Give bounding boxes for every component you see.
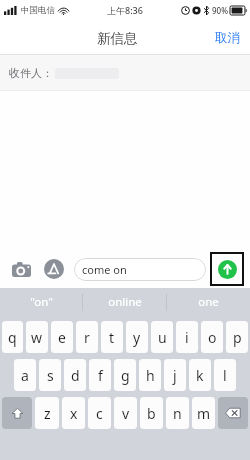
button[interactable]: g [114, 359, 136, 391]
staticText: h [146, 366, 155, 385]
button[interactable]: Camera [6, 254, 36, 284]
button[interactable]: Backspace [218, 397, 248, 429]
staticText: 收件人： [9, 66, 53, 80]
staticText: g [121, 366, 130, 385]
button[interactable]: n [166, 397, 189, 429]
button[interactable]: b [140, 397, 163, 429]
button[interactable]: y [126, 321, 148, 353]
button[interactable]: z [35, 397, 59, 429]
staticText: s [47, 366, 54, 385]
button[interactable]: come on [74, 258, 206, 281]
button[interactable]: o [201, 321, 223, 353]
staticText: n [173, 404, 182, 423]
staticText: w [31, 328, 43, 347]
button[interactable]: j [164, 359, 186, 391]
button[interactable]: w [26, 321, 48, 353]
staticText: m [197, 404, 211, 423]
button[interactable]: i [176, 321, 198, 353]
button[interactable]: q [2, 321, 23, 353]
staticText: p [233, 328, 242, 347]
staticText: j [173, 366, 177, 385]
button[interactable]: u [151, 321, 173, 353]
staticText: x [70, 404, 78, 423]
staticText: t [109, 328, 115, 347]
staticText: r [84, 328, 90, 347]
staticText: q [8, 328, 17, 347]
button[interactable]: one [167, 288, 250, 316]
button[interactable]: m [192, 397, 215, 429]
staticText: 取消 [215, 30, 240, 46]
staticText: "on" [30, 294, 53, 310]
staticText: 中国电信 [21, 5, 55, 16]
staticText: come on [82, 262, 127, 277]
button[interactable]: t [101, 321, 123, 353]
button[interactable]: online [83, 288, 166, 316]
button[interactable]: 取消 [205, 25, 250, 51]
staticText: o [208, 328, 217, 347]
staticText: i [185, 328, 189, 347]
staticText: d [71, 366, 80, 385]
staticText: v [122, 404, 130, 423]
staticText: e [58, 328, 66, 347]
staticText: online [108, 294, 142, 310]
button[interactable]: h [139, 359, 161, 391]
button[interactable]: l [214, 359, 236, 391]
staticText: one [198, 294, 219, 310]
staticText: a [21, 366, 29, 385]
staticText: c [96, 404, 103, 423]
button[interactable]: v [114, 397, 137, 429]
staticText: 90% [212, 5, 228, 16]
staticText: z [44, 404, 51, 423]
button[interactable]: f [89, 359, 111, 391]
staticText: 新信息 [97, 30, 138, 47]
button[interactable]: Shift [2, 397, 32, 429]
button[interactable]: k [189, 359, 211, 391]
button[interactable]: d [64, 359, 86, 391]
button[interactable]: p [226, 321, 248, 353]
button[interactable]: r [76, 321, 98, 353]
button[interactable]: Send [210, 252, 244, 286]
staticText: f [98, 366, 103, 385]
staticText: l [223, 366, 227, 385]
button[interactable]: "on" [0, 288, 82, 316]
button[interactable]: c [88, 397, 111, 429]
staticText: b [147, 404, 156, 423]
button[interactable]: s [39, 359, 61, 391]
button[interactable]: x [62, 397, 85, 429]
staticText: 上午8:36 [107, 4, 143, 16]
button[interactable]: a [14, 359, 36, 391]
staticText: k [196, 366, 204, 385]
button[interactable]: e [51, 321, 73, 353]
button[interactable]: App Store [39, 254, 69, 284]
button[interactable]: 收件人： [0, 55, 250, 90]
staticText: u [158, 328, 167, 347]
staticText: y [133, 328, 141, 347]
